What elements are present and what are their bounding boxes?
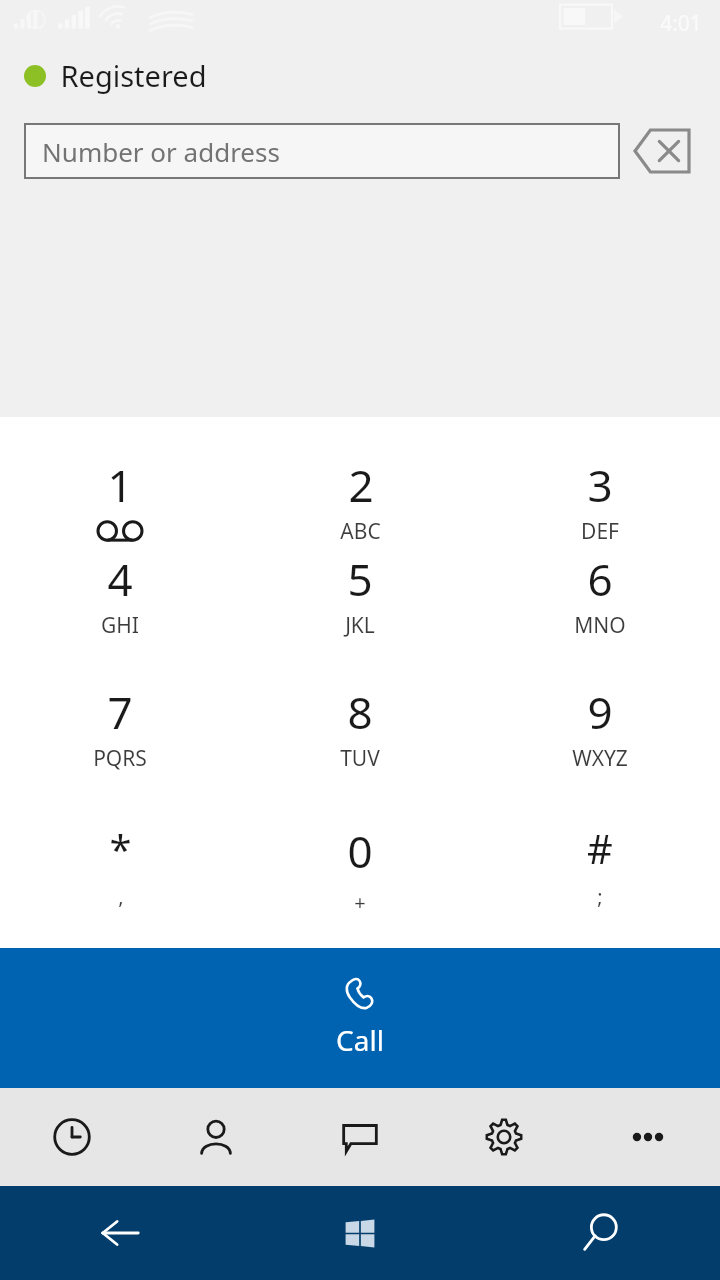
button[interactable]: History (0, 1088, 144, 1186)
staticText: TUV (340, 744, 380, 773)
button[interactable]: Backspace (620, 121, 704, 181)
button[interactable]: 3 (480, 455, 720, 549)
button[interactable]: More options (576, 1088, 720, 1186)
staticText: , (118, 883, 124, 910)
staticText: 3 (587, 455, 613, 515)
staticText: GHI (101, 611, 139, 640)
staticText: Call (336, 1021, 384, 1059)
button[interactable]: 9 (480, 682, 720, 815)
staticText: 1 (107, 455, 133, 515)
staticText: 4:01 (660, 9, 702, 38)
staticText: 2 (348, 455, 374, 515)
button[interactable]: 2 (240, 455, 480, 549)
staticText: 0 (347, 821, 373, 881)
button[interactable]: # (480, 815, 720, 948)
button[interactable]: Messages (288, 1088, 432, 1186)
staticText: 5 (347, 549, 373, 609)
staticText: WXYZ (572, 744, 628, 773)
button[interactable]: 7 (0, 682, 240, 815)
staticText: 4 (107, 549, 133, 609)
button[interactable]: 1 (0, 455, 240, 549)
staticText: Number or address (42, 134, 280, 169)
button[interactable]: Contacts (144, 1088, 288, 1186)
staticText: PQRS (93, 744, 147, 773)
button[interactable]: * (0, 815, 240, 948)
staticText: * (109, 821, 132, 875)
button[interactable]: Start (240, 1186, 480, 1280)
button[interactable]: Number or address (24, 123, 620, 179)
button[interactable]: 0 (240, 815, 480, 948)
button[interactable]: Registered (24, 56, 207, 95)
button[interactable]: 4 (0, 549, 240, 682)
staticText: JKL (345, 611, 375, 640)
staticText: ABC (340, 517, 381, 546)
button[interactable]: Back (0, 1186, 240, 1280)
staticText: 7 (107, 682, 133, 742)
staticText: MNO (574, 611, 626, 640)
button[interactable]: 5 (240, 549, 480, 682)
staticText: DEF (581, 517, 619, 546)
button[interactable]: Settings (432, 1088, 576, 1186)
button[interactable]: 6 (480, 549, 720, 682)
button[interactable]: Call (0, 948, 720, 1088)
button[interactable]: Search (480, 1186, 720, 1280)
staticText: 8 (347, 682, 373, 742)
staticText: Registered (60, 56, 207, 95)
staticText: + (354, 889, 366, 916)
staticText: ; (597, 883, 603, 910)
staticText: 9 (587, 682, 613, 742)
staticText: 6 (587, 549, 613, 609)
staticText: # (587, 821, 613, 875)
button[interactable]: 8 (240, 682, 480, 815)
